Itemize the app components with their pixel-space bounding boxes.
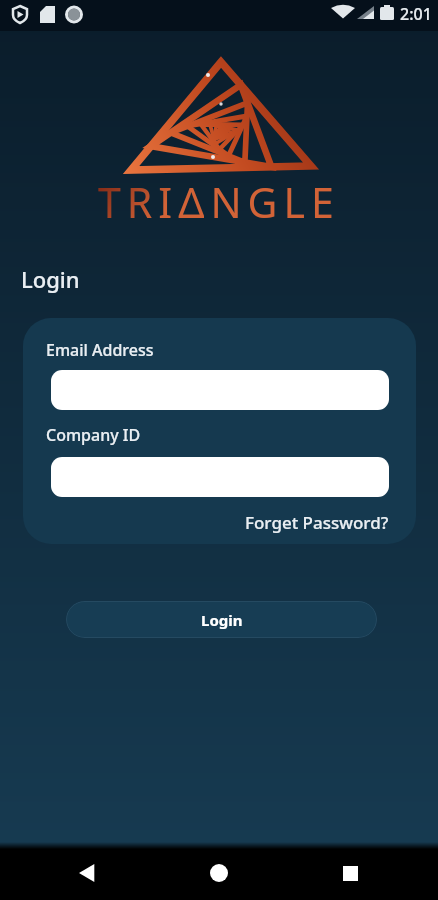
button[interactable] xyxy=(191,846,247,900)
staticText: Login xyxy=(21,264,80,294)
button[interactable]: Forget Password? xyxy=(245,511,389,534)
button[interactable]: Login xyxy=(66,601,377,638)
button[interactable] xyxy=(51,370,389,410)
staticText: Login xyxy=(201,610,243,630)
button[interactable] xyxy=(60,846,116,900)
button[interactable] xyxy=(322,846,378,900)
staticText: Company ID xyxy=(46,424,141,446)
staticText: 2:01 xyxy=(400,3,432,25)
staticText: Email Address xyxy=(46,339,154,361)
staticText: TRIΔNGLE xyxy=(98,174,340,230)
button[interactable] xyxy=(51,457,389,497)
